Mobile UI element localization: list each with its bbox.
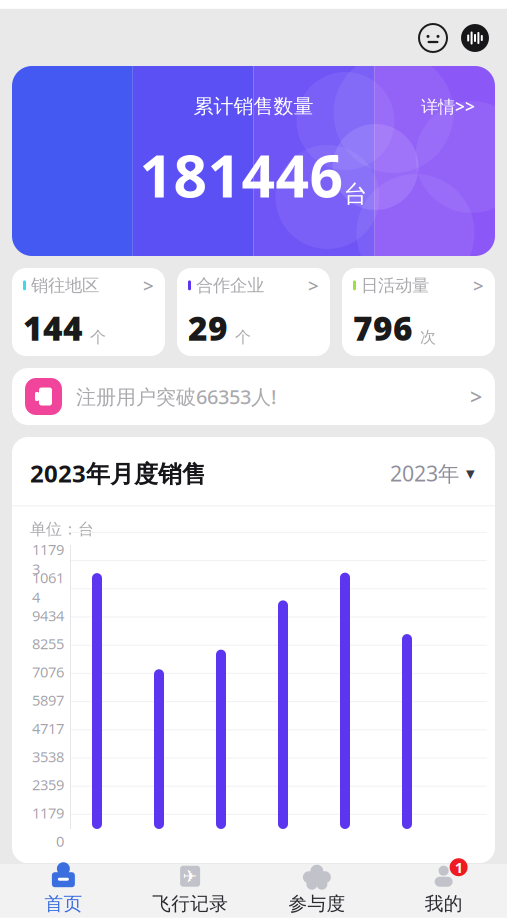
- staticText: 3538: [32, 747, 64, 766]
- staticText: >: [470, 382, 482, 411]
- staticText: 我的: [425, 892, 463, 915]
- staticText: 8255: [32, 634, 64, 653]
- staticText: 个: [235, 327, 251, 347]
- staticText: 796: [353, 306, 413, 350]
- staticText: 4717: [32, 718, 64, 738]
- staticText: 首页: [44, 892, 82, 915]
- staticText: 10614: [32, 568, 64, 607]
- staticText: 累计销售数量: [193, 94, 313, 119]
- button[interactable]: Feedback: [419, 24, 447, 52]
- button[interactable]: 日活动量: [342, 268, 495, 356]
- staticText: 次: [420, 327, 436, 347]
- button[interactable]: 详情>>: [415, 91, 481, 122]
- staticText: >: [143, 273, 154, 298]
- staticText: 1: [455, 857, 463, 877]
- staticText: 合作企业: [196, 275, 264, 296]
- staticText: 144: [23, 306, 83, 350]
- staticText: 日活动量: [361, 275, 429, 296]
- staticText: 2023年月度销售: [30, 457, 206, 489]
- button[interactable]: Activity: [461, 24, 489, 52]
- staticText: 2359: [32, 775, 64, 794]
- button[interactable]: ✈: [127, 858, 254, 918]
- staticText: 0: [56, 831, 64, 851]
- button[interactable]: 注册用户突破66353人!: [12, 368, 495, 425]
- staticText: 注册用户突破66353人!: [76, 383, 276, 410]
- staticText: 飞行记录: [152, 892, 228, 915]
- staticText: 11793: [32, 540, 64, 579]
- staticText: 个: [90, 327, 106, 347]
- staticText: 台: [343, 179, 367, 209]
- staticText: 9434: [32, 606, 64, 625]
- staticText: 181446: [139, 136, 343, 214]
- button[interactable]: 销往地区: [12, 268, 165, 356]
- staticText: 2023年: [390, 459, 459, 487]
- staticText: ✈: [183, 866, 198, 886]
- button[interactable]: 首页: [0, 858, 127, 918]
- staticText: 详情>>: [421, 95, 475, 118]
- staticText: 销往地区: [31, 275, 99, 296]
- staticText: 1179: [32, 803, 64, 823]
- button[interactable]: 参与度: [253, 858, 380, 918]
- staticText: 29: [188, 306, 228, 350]
- button[interactable]: 合作企业: [177, 268, 330, 356]
- button[interactable]: 2023年: [388, 455, 477, 491]
- staticText: ▾: [466, 463, 475, 483]
- staticText: 单位：台: [30, 519, 94, 539]
- button[interactable]: 1: [380, 858, 507, 918]
- staticText: 7076: [32, 662, 64, 682]
- staticText: >: [308, 273, 319, 298]
- staticText: >: [473, 273, 484, 298]
- staticText: 参与度: [288, 892, 345, 915]
- staticText: 5897: [32, 690, 64, 710]
